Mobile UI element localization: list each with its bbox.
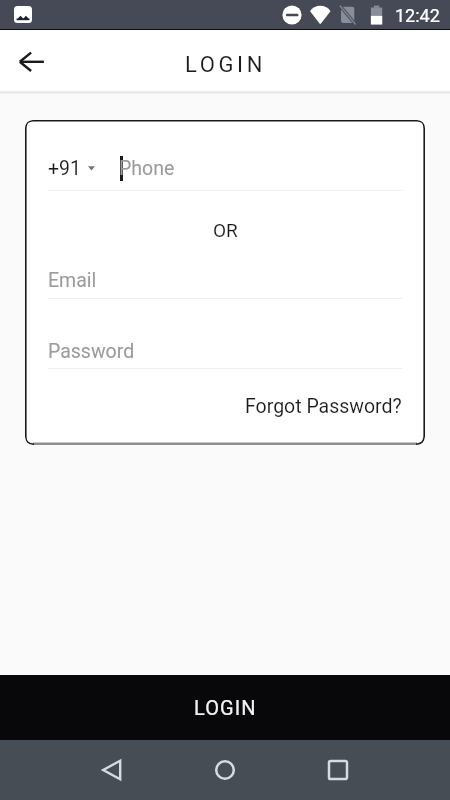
staticText: Forgot Password?: [245, 395, 402, 418]
staticText: Email: [48, 269, 97, 292]
staticText: LOGIN: [185, 52, 266, 78]
button[interactable]: Back: [1, 31, 63, 93]
staticText: 12:42: [395, 5, 440, 26]
button[interactable]: LOGIN: [0, 675, 450, 740]
button[interactable]: Home: [195, 740, 255, 800]
staticText: OR: [213, 219, 238, 241]
staticText: +91: [48, 157, 81, 180]
button[interactable]: Back: [82, 740, 142, 800]
staticText: Phone: [119, 157, 175, 180]
staticText: Password: [48, 340, 135, 363]
button[interactable]: +91: [48, 157, 95, 180]
staticText: LOGIN: [194, 696, 257, 719]
button[interactable]: Recents: [308, 740, 368, 800]
button[interactable]: Forgot Password?: [245, 395, 402, 418]
